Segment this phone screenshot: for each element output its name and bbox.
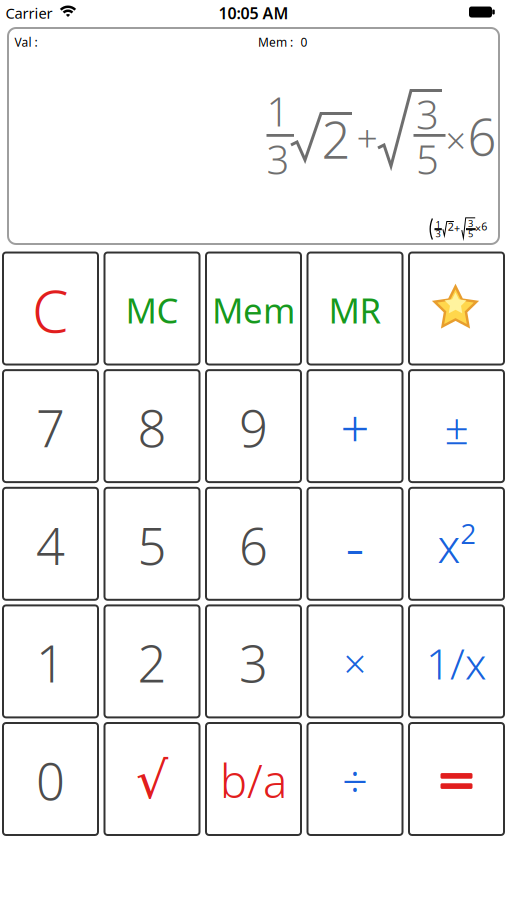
staticText: 6: [481, 219, 487, 233]
button[interactable]: 2: [103, 604, 200, 718]
staticText: 2: [448, 219, 454, 234]
button[interactable]: Mem: [205, 251, 302, 365]
staticText: 1: [36, 629, 65, 697]
staticText: +: [454, 221, 460, 235]
staticText: 10:05 AM: [218, 2, 288, 24]
staticText: MR: [328, 287, 381, 333]
staticText: ×: [445, 116, 466, 164]
button[interactable]: ÷: [306, 722, 403, 836]
button[interactable]: MR: [306, 251, 403, 365]
staticText: b/a: [220, 750, 287, 811]
staticText: -: [345, 506, 364, 584]
staticText: 3: [266, 132, 289, 185]
button[interactable]: ±: [408, 369, 505, 483]
staticText: 2: [321, 105, 350, 173]
staticText: 3: [239, 629, 268, 697]
staticText: 6: [467, 102, 496, 170]
staticText: 3: [468, 217, 473, 230]
button[interactable]: 7: [2, 369, 99, 483]
button[interactable]: 0: [2, 722, 99, 836]
staticText: 9: [239, 394, 268, 461]
button[interactable]: 8: [103, 369, 200, 483]
staticText: 1: [266, 84, 289, 137]
staticText: +: [356, 112, 377, 162]
staticText: 3: [416, 87, 439, 140]
button[interactable]: [408, 722, 505, 836]
staticText: ÷: [342, 750, 368, 811]
staticText: √: [136, 752, 168, 809]
button[interactable]: ×: [306, 604, 403, 718]
button[interactable]: [408, 251, 505, 365]
button[interactable]: x²: [408, 487, 505, 601]
button[interactable]: 1/x: [408, 604, 505, 718]
staticText: Carrier: [5, 3, 52, 23]
staticText: 3: [436, 227, 441, 240]
button[interactable]: 4: [2, 487, 99, 601]
staticText: 2: [137, 629, 166, 697]
staticText: ×: [475, 221, 481, 235]
button[interactable]: 3: [205, 604, 302, 718]
button[interactable]: 5: [103, 487, 200, 601]
button[interactable]: -: [306, 487, 403, 601]
staticText: 4: [36, 512, 65, 579]
button[interactable]: b/a: [205, 722, 302, 836]
staticText: +: [340, 394, 369, 461]
button[interactable]: 6: [205, 487, 302, 601]
staticText: 5: [468, 227, 473, 240]
button[interactable]: C: [2, 251, 99, 365]
staticText: 7: [36, 394, 65, 461]
staticText: 1/x: [426, 635, 487, 691]
button[interactable]: 9: [205, 369, 302, 483]
staticText: C: [32, 271, 69, 349]
button[interactable]: 1: [2, 604, 99, 718]
staticText: 5: [137, 512, 166, 579]
staticText: 0: [300, 34, 307, 50]
staticText: 8: [137, 394, 166, 461]
staticText: 5: [416, 132, 439, 185]
staticText: 6: [239, 512, 268, 579]
staticText: Val :: [14, 34, 37, 50]
button[interactable]: MC: [103, 251, 200, 365]
staticText: ±: [444, 399, 468, 456]
button[interactable]: √: [103, 722, 200, 836]
staticText: MC: [125, 287, 178, 333]
staticText: x²: [437, 515, 475, 575]
staticText: ×: [343, 636, 366, 689]
button[interactable]: +: [306, 369, 403, 483]
staticText: 0: [36, 747, 65, 814]
staticText: Mem :: [258, 34, 293, 50]
staticText: Mem: [212, 287, 295, 333]
staticText: 1: [436, 218, 441, 231]
